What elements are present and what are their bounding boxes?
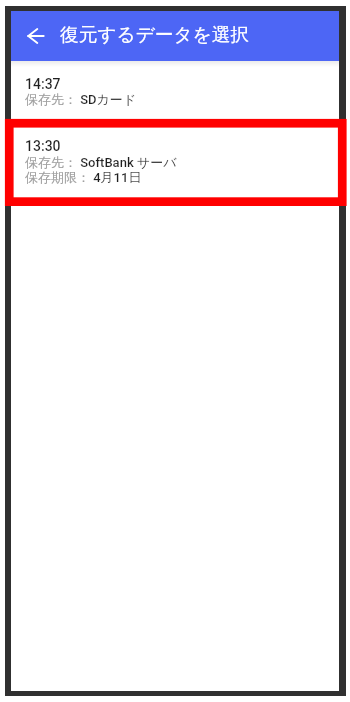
button[interactable]: 13:30 <box>11 119 339 211</box>
staticText: 復元するデータを選択 <box>60 23 250 47</box>
button[interactable]: Back <box>18 18 54 54</box>
staticText: 保存期限： 4月11日 <box>25 169 142 185</box>
staticText: 14:37 <box>25 76 61 92</box>
staticText: 保存先： SDカード <box>25 91 137 107</box>
staticText: 13:30 <box>25 138 61 154</box>
staticText: 保存先： SoftBank サーバ <box>25 154 177 170</box>
button[interactable]: 14:37 <box>11 60 339 119</box>
